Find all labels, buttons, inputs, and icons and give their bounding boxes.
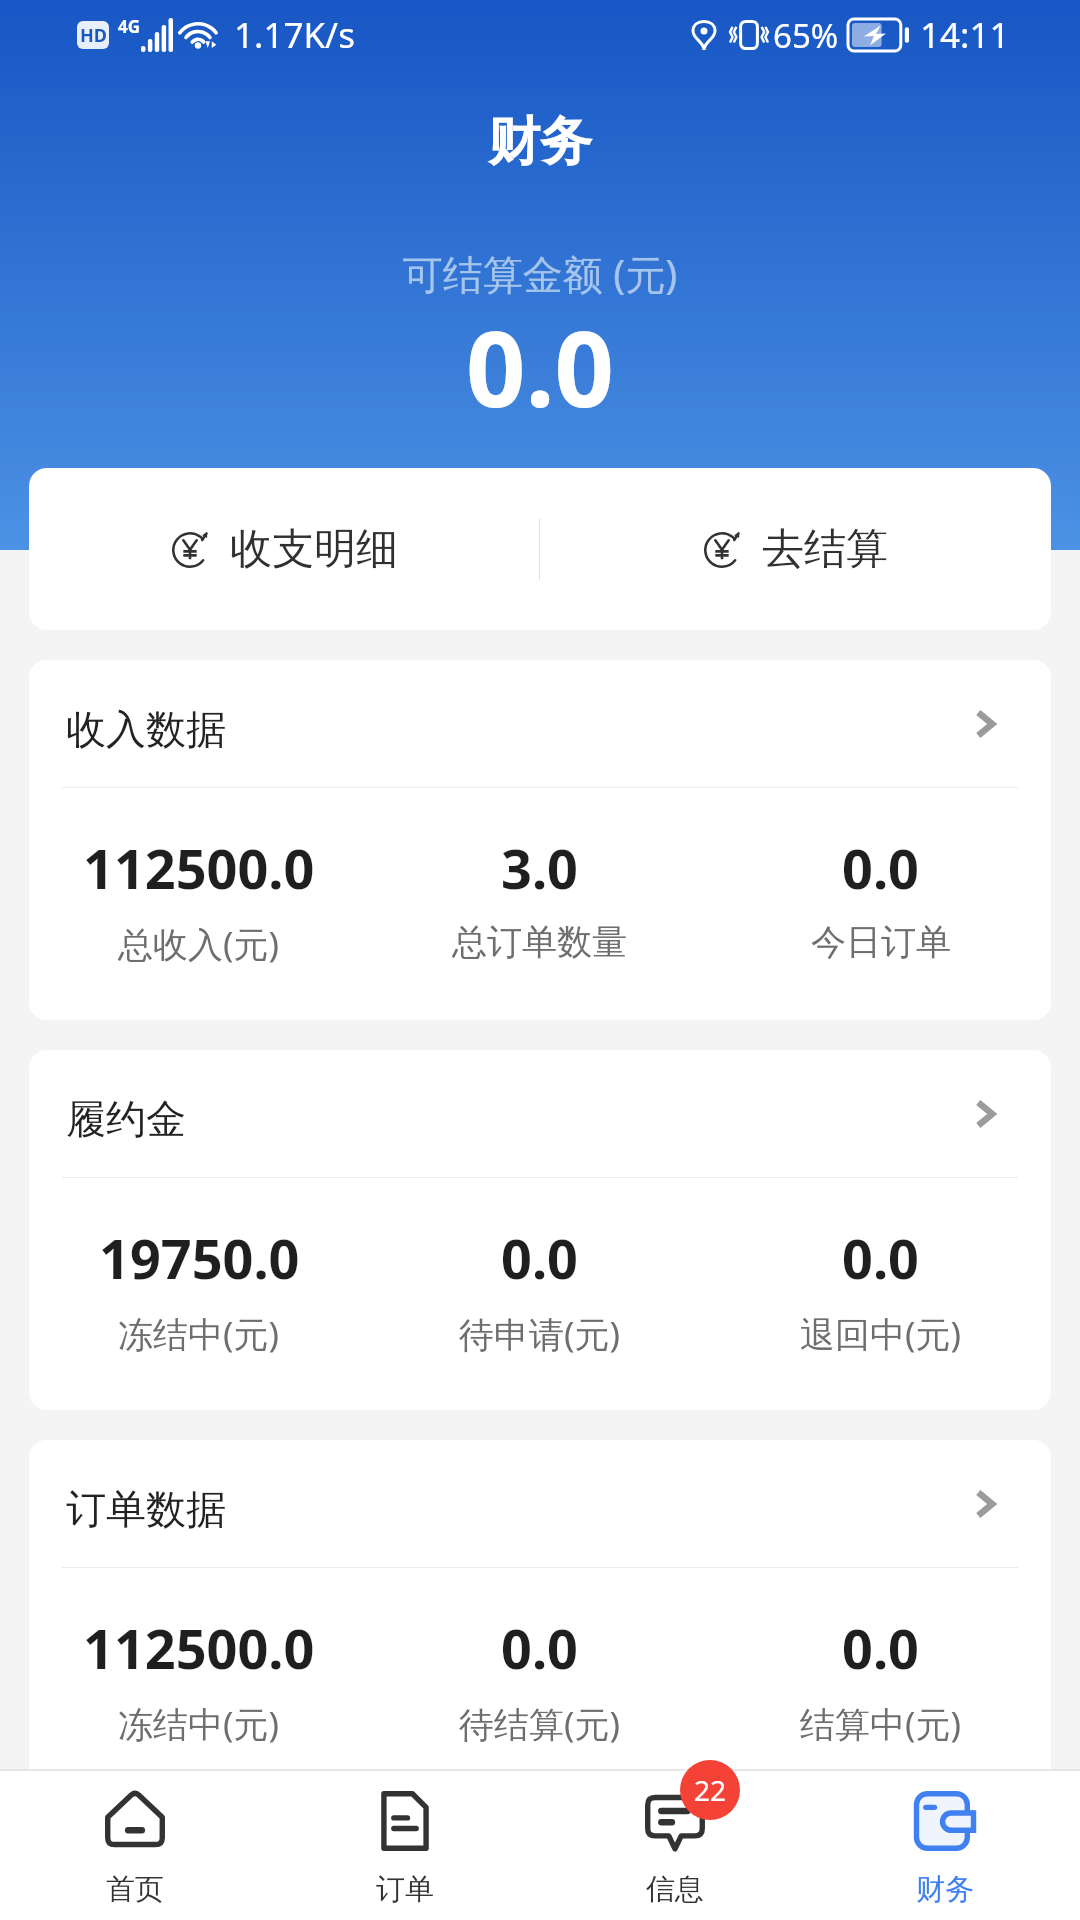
button[interactable]: 履约金 [29,1050,1051,1177]
button[interactable]: 订单数据 [29,1440,1051,1567]
staticText: 订单数据 [66,1484,226,1534]
staticText: 0.0 [842,1611,919,1685]
button[interactable]: 去结算 [540,468,1051,630]
staticText: 结算中(元) [800,1700,962,1748]
other: 查看详情 [973,1491,999,1517]
staticText: 去结算 [762,523,888,576]
button[interactable]: 信息 [540,1771,810,1920]
button[interactable]: 订单数据 [29,1440,1051,1800]
button[interactable]: 收入数据 [29,660,1051,1020]
button[interactable]: 收支明细 [29,468,539,630]
button[interactable]: 履约金 [29,1050,1051,1410]
staticText: 待申请(元) [459,1310,621,1358]
staticText: 信息 [646,1871,704,1908]
staticText: 112500.0 [83,1611,315,1685]
staticText: 0.0 [501,1611,578,1685]
staticText: 22 [694,1771,727,1809]
staticText: 财务 [916,1871,974,1908]
staticText: 112500.0 [83,831,315,905]
staticText: 订单 [376,1871,434,1908]
staticText: 0.0 [842,1221,919,1295]
staticText: 4G [118,15,141,38]
staticText: 65% [773,13,839,58]
staticText: 冻结中(元) [118,1700,280,1748]
staticText: HD [80,23,107,48]
staticText: 首页 [106,1871,164,1908]
button[interactable]: 财务 [810,1771,1080,1920]
staticText: 19750.0 [99,1221,300,1295]
staticText: 退回中(元) [800,1310,962,1358]
staticText: 0.0 [842,831,919,905]
staticText: 履约金 [66,1094,186,1144]
staticText: 0.0 [501,1221,578,1295]
staticText: 冻结中(元) [118,1310,280,1358]
staticText: 可结算金额 (元) [0,246,1080,301]
button[interactable]: 首页 [0,1771,270,1920]
staticText: 财务 [0,109,1080,175]
staticText: 待结算(元) [459,1700,621,1748]
staticText: 总订单数量 [452,920,627,964]
staticText: 总收入(元) [118,920,280,968]
staticText: 今日订单 [811,920,951,964]
staticText: 1.17K/s [234,11,355,59]
staticText: 3.0 [501,831,578,905]
staticText: 收支明细 [230,523,398,576]
staticText: 收入数据 [66,704,226,754]
other: 查看详情 [973,1101,999,1127]
button[interactable]: 收入数据 [29,660,1051,787]
staticText: 0.0 [0,296,1080,438]
other: 查看详情 [973,711,999,737]
button[interactable]: 订单 [270,1771,540,1920]
staticText: 14:11 [920,11,1010,59]
